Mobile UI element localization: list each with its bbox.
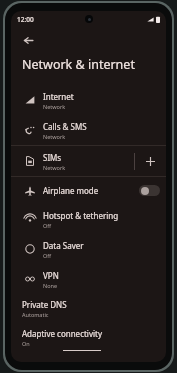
staticText: None xyxy=(43,282,58,289)
button[interactable]: Add SIM xyxy=(135,146,166,176)
staticText: Data Saver xyxy=(43,240,84,251)
button[interactable]: VPN xyxy=(11,264,166,294)
button[interactable]: Data Saver xyxy=(11,234,166,264)
staticText: Off xyxy=(43,252,52,259)
staticText: Network xyxy=(43,164,66,171)
staticText: Airplane mode xyxy=(43,185,99,196)
staticText: On xyxy=(22,340,30,347)
staticText: Automatic xyxy=(22,311,49,318)
staticText: VPN xyxy=(43,270,59,281)
staticText: Internet xyxy=(43,91,74,102)
staticText: Private DNS xyxy=(22,299,67,310)
button[interactable]: Calls & SMS xyxy=(11,115,166,145)
button[interactable]: Private DNS xyxy=(11,294,166,323)
button[interactable]: Adaptive connectivity xyxy=(11,323,166,352)
staticText: Calls & SMS xyxy=(43,121,87,132)
staticText: Off xyxy=(43,222,52,229)
button[interactable]: Internet xyxy=(11,85,166,115)
staticText: Adaptive connectivity xyxy=(22,328,103,339)
button[interactable]: SIMs xyxy=(11,146,134,176)
staticText: Network & internet xyxy=(22,56,135,73)
staticText: 12:00 xyxy=(17,15,34,24)
staticText: Network xyxy=(43,133,66,140)
button[interactable]: Hotspot & tethering xyxy=(11,204,166,234)
staticText: Network xyxy=(43,103,66,110)
staticText: SIMs xyxy=(43,152,62,163)
button[interactable]: Airplane mode xyxy=(139,185,160,196)
button[interactable]: Airplane mode xyxy=(11,177,166,204)
staticText: Hotspot & tethering xyxy=(43,210,119,221)
button[interactable]: Back xyxy=(15,27,41,53)
